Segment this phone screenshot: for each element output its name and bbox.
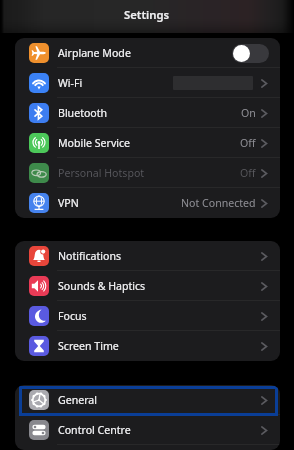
staticText: Personal Hotspot: [58, 166, 145, 180]
button[interactable]: Control Centre: [15, 415, 280, 445]
button[interactable]: Sounds & Haptics: [15, 271, 280, 301]
staticText: Airplane Mode: [58, 46, 131, 60]
staticText: Bluetooth: [58, 106, 108, 120]
staticText: Screen Time: [58, 339, 119, 353]
staticText: Sounds & Haptics: [58, 279, 146, 293]
button[interactable]: Focus: [15, 301, 280, 331]
staticText: Control Centre: [58, 423, 131, 437]
staticText: Settings: [124, 7, 170, 22]
staticText: General: [58, 393, 98, 407]
button[interactable]: Personal Hotspot: [15, 158, 280, 188]
button[interactable]: Bluetooth: [15, 98, 280, 128]
staticText: Off: [240, 166, 256, 180]
button[interactable]: Screen Time: [15, 331, 280, 361]
staticText: Notifications: [58, 249, 122, 263]
button[interactable]: Airplane Mode: [15, 38, 280, 68]
button[interactable]: VPN: [15, 188, 280, 218]
staticText: VPN: [58, 196, 79, 210]
button[interactable]: Wi-Fi: [15, 68, 280, 98]
staticText: Focus: [58, 309, 87, 323]
staticText: Not Connected: [181, 196, 256, 210]
staticText: Mobile Service: [58, 136, 131, 150]
button[interactable]: Notifications: [15, 241, 280, 271]
button[interactable]: General: [15, 385, 280, 415]
staticText: Wi-Fi: [58, 76, 83, 90]
button[interactable]: Airplane Mode toggle: [232, 44, 269, 63]
button[interactable]: Mobile Service: [15, 128, 280, 158]
staticText: Off: [240, 136, 256, 150]
staticText: On: [241, 106, 256, 120]
